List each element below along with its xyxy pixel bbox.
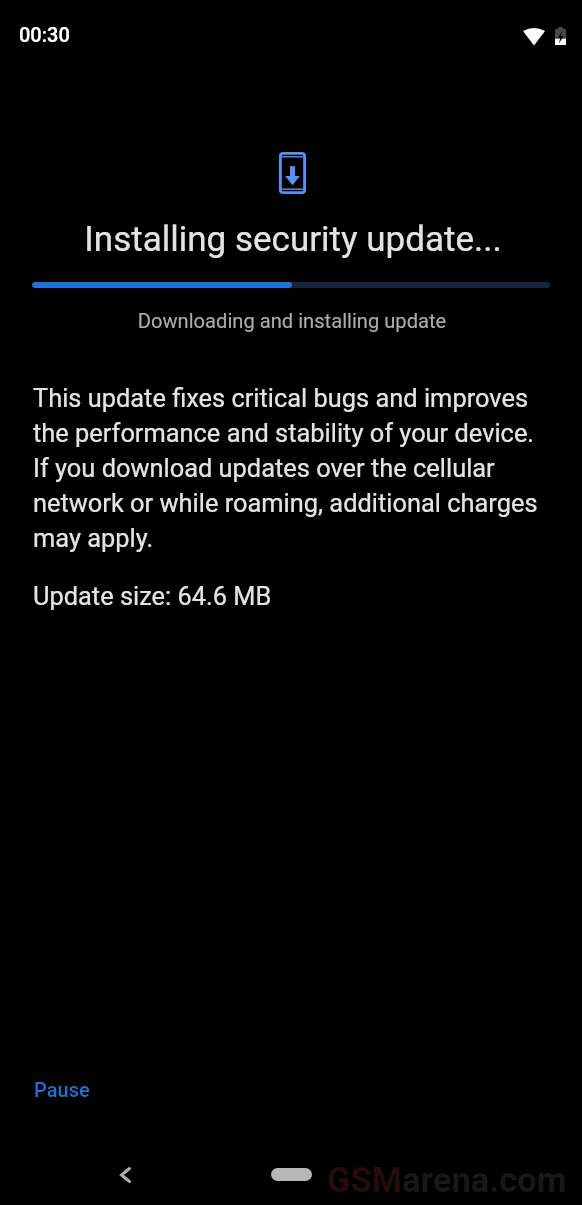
staticText: Update size: 64.6 MB <box>33 581 272 611</box>
staticText: arena.com <box>402 1160 567 1200</box>
staticText: Installing security update... <box>22 219 564 260</box>
button[interactable]: Pause <box>25 1071 99 1108</box>
staticText: Downloading and installing update <box>1 309 582 333</box>
button[interactable]: Back <box>101 1151 149 1199</box>
staticText: This update fixes critical bugs and impr… <box>33 383 543 553</box>
button[interactable]: Home <box>271 1168 312 1181</box>
staticText: Pause <box>34 1078 90 1101</box>
staticText: GSM <box>327 1160 402 1200</box>
staticText: 00:30 <box>19 23 70 46</box>
